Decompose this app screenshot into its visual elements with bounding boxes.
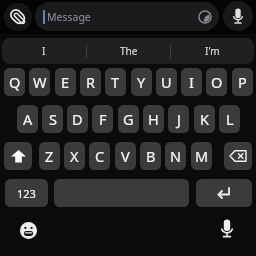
button[interactable]: G (118, 105, 139, 133)
staticText: P (238, 72, 247, 92)
button[interactable]: C (89, 142, 110, 170)
button[interactable]: K (194, 105, 215, 133)
button[interactable]: P (232, 68, 253, 96)
staticText: 123 (17, 186, 36, 201)
staticText: I (189, 72, 194, 92)
button[interactable]: 123 (5, 179, 48, 207)
button[interactable]: Q (4, 68, 25, 96)
staticText: S (49, 109, 57, 129)
button[interactable] (4, 142, 32, 170)
button[interactable] (196, 179, 252, 207)
button[interactable]: F (92, 105, 113, 133)
button[interactable]: I'm (171, 38, 254, 64)
button[interactable]: U (156, 68, 177, 96)
staticText: Y (137, 72, 146, 92)
button[interactable]: W (29, 68, 50, 96)
staticText: H (148, 109, 159, 129)
staticText: M (195, 146, 209, 166)
button[interactable]: Y (131, 68, 152, 96)
button[interactable]: D (67, 105, 88, 133)
staticText: Q (9, 72, 21, 92)
staticText: R (86, 72, 96, 92)
staticText: O (211, 72, 223, 92)
button[interactable] (213, 215, 241, 243)
button[interactable]: I (2, 38, 86, 64)
button[interactable]: V (115, 142, 136, 170)
button[interactable] (4, 3, 32, 31)
staticText: C (95, 146, 105, 166)
button[interactable]: The (87, 38, 170, 64)
button[interactable]: L (219, 105, 240, 133)
button[interactable]: B (140, 142, 161, 170)
button[interactable]: Z (39, 142, 60, 170)
staticText: I'm (205, 44, 220, 58)
staticText: L (226, 109, 234, 129)
button[interactable] (223, 1, 253, 31)
staticText: J (177, 109, 181, 129)
staticText: The (120, 44, 138, 58)
staticText: X (70, 146, 79, 166)
button[interactable]: N (165, 142, 186, 170)
staticText: B (146, 146, 156, 166)
staticText: T (111, 72, 120, 92)
staticText: G (123, 109, 134, 129)
staticText: Z (45, 146, 54, 166)
staticText: Message (47, 10, 91, 24)
button[interactable]: E (55, 68, 76, 96)
button[interactable] (54, 179, 189, 207)
staticText: V (121, 146, 130, 166)
button[interactable]: Message (35, 2, 219, 31)
staticText: K (200, 109, 209, 129)
button[interactable]: S (42, 105, 63, 133)
button[interactable]: R (80, 68, 101, 96)
staticText: I (42, 44, 46, 58)
staticText: F (99, 109, 107, 129)
staticText: U (161, 72, 172, 92)
staticText: D (72, 109, 83, 129)
button[interactable]: A (17, 105, 38, 133)
staticText: E (61, 72, 70, 92)
staticText: W (33, 72, 47, 92)
button[interactable]: X (64, 142, 85, 170)
button[interactable] (14, 216, 42, 244)
button[interactable]: M (191, 142, 212, 170)
staticText: N (170, 146, 182, 166)
button[interactable]: T (105, 68, 126, 96)
button[interactable] (224, 142, 252, 170)
button[interactable]: H (143, 105, 164, 133)
button[interactable]: J (168, 105, 189, 133)
staticText: A (23, 109, 33, 129)
button[interactable]: O (206, 68, 227, 96)
button[interactable]: I (181, 68, 202, 96)
